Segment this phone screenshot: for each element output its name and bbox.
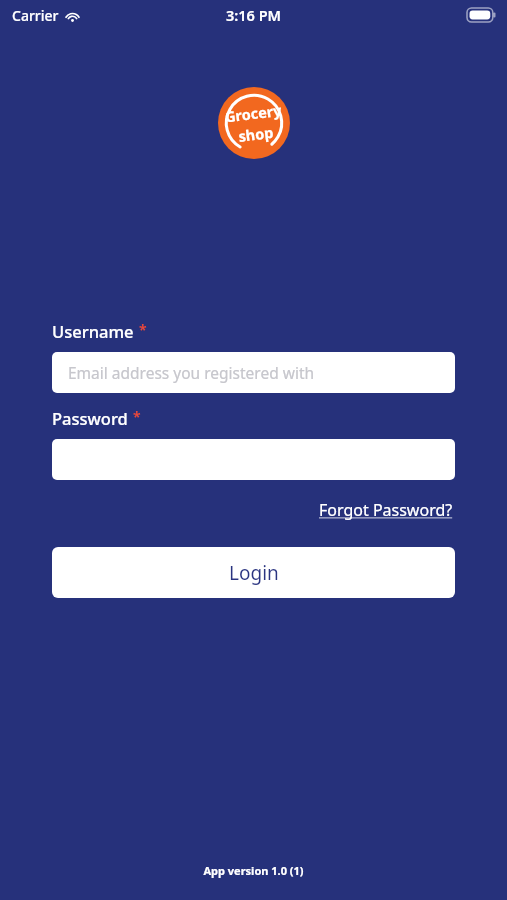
staticText: * <box>139 320 147 339</box>
staticText: Carrier <box>12 6 59 25</box>
other: Grocery Shop logo <box>218 87 290 159</box>
staticText: shop <box>237 122 274 146</box>
button[interactable]: Login <box>52 547 455 598</box>
staticText: Forgot Password? <box>319 499 453 521</box>
button[interactable]: Forgot Password? <box>317 495 455 525</box>
staticText: App version 1.0 (1) <box>203 863 304 878</box>
staticText: Username <box>52 320 134 342</box>
button[interactable] <box>52 439 455 480</box>
staticText: * <box>133 407 141 426</box>
staticText: Grocery <box>224 100 283 126</box>
button[interactable]: Email address you registered with <box>52 352 455 393</box>
staticText: 3:16 PM <box>226 5 282 25</box>
staticText: Password <box>52 407 128 429</box>
staticText: Login <box>229 560 279 586</box>
staticText: Email address you registered with <box>68 362 315 383</box>
